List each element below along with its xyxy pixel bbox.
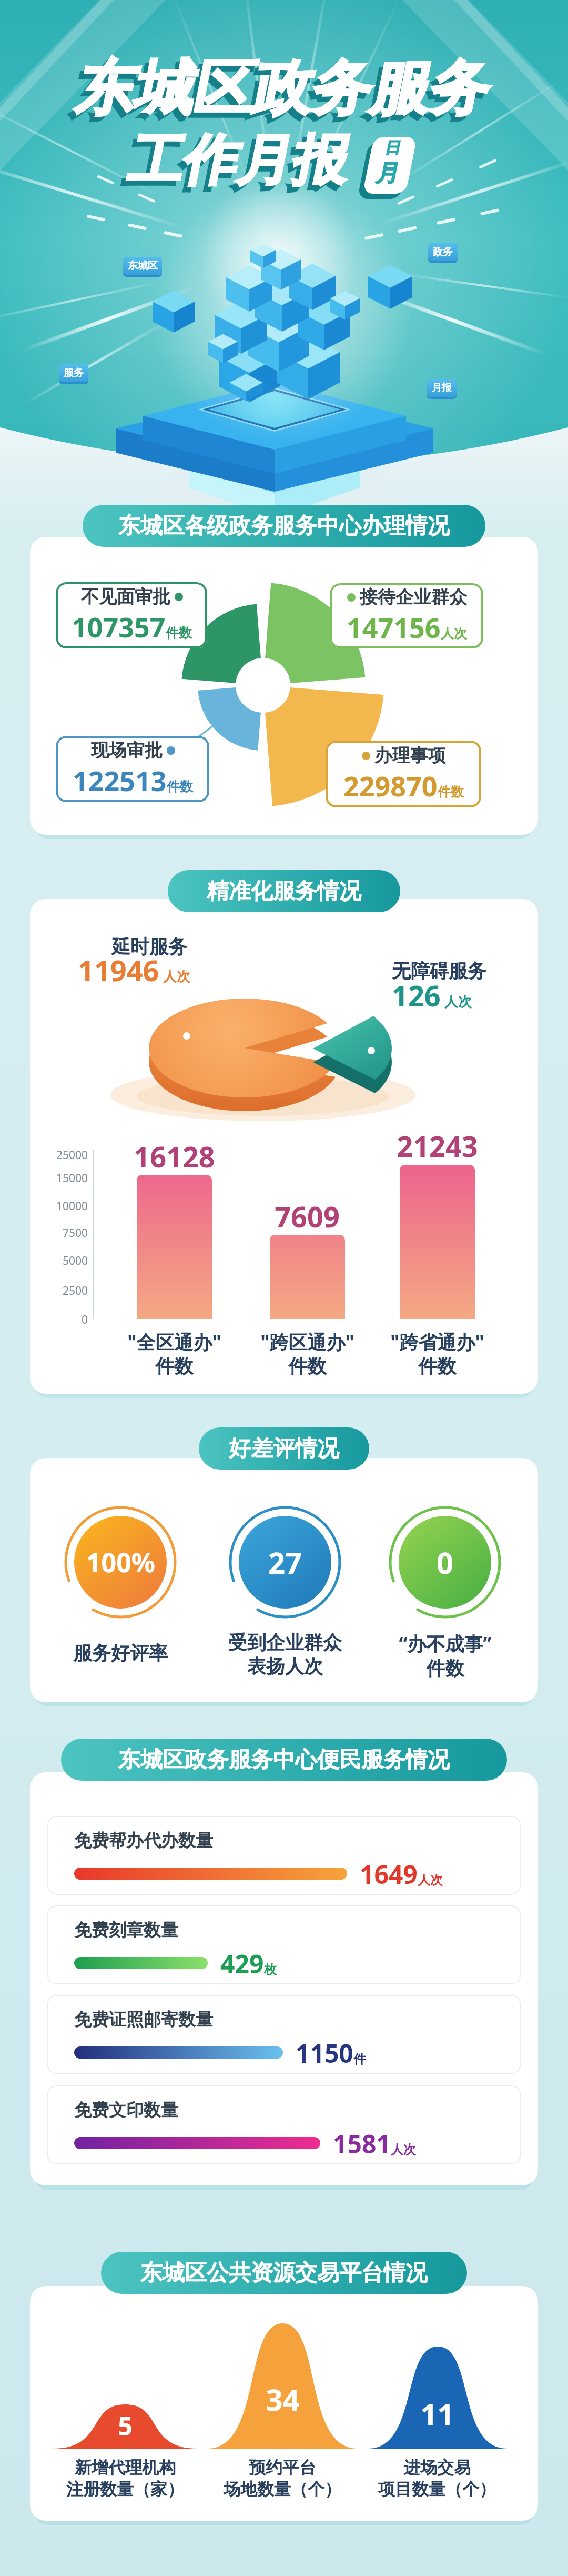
staticText: 147156 [347, 608, 441, 646]
staticText: 办理事项 [374, 744, 446, 767]
button[interactable]: 免费文印数量 [47, 2085, 521, 2164]
staticText: 15000 [56, 1171, 88, 1186]
staticText: 接待企业群众 [360, 586, 467, 608]
staticText: "跨省通办" 件数 [390, 1329, 484, 1379]
staticText: 服务 [64, 367, 84, 380]
staticText: 人次 [441, 992, 472, 1011]
button[interactable]: 月报 [427, 379, 457, 397]
staticText: 21243 [397, 1126, 478, 1165]
staticText: “办不成事” 件数 [399, 1631, 492, 1681]
staticText: 人次 [441, 625, 467, 642]
staticText: 服务好评率 [73, 1641, 168, 1665]
button[interactable]: 服务 [59, 364, 88, 382]
staticText: 107357 [72, 608, 166, 645]
staticText: 10000 [56, 1199, 88, 1214]
staticText: 件数 [166, 625, 192, 641]
button[interactable]: 免费刻章数量 [47, 1905, 521, 1984]
staticText: 现场审批 [91, 739, 163, 762]
staticText: 5000 [63, 1253, 88, 1269]
staticText: 东城区政务服务中心便民服务情况 [118, 1746, 450, 1774]
staticText: 1581 [333, 2126, 391, 2161]
staticText: 7609 [275, 1197, 340, 1236]
staticText: 件 [353, 2051, 366, 2067]
staticText: 东城区 [128, 259, 158, 272]
staticText: 受到企业群众 表扬人次 [228, 1631, 342, 1679]
staticText: 件数 [167, 778, 193, 795]
button[interactable]: 东城区政务服务中心便民服务情况 [61, 1739, 507, 1781]
button[interactable]: 精准化服务情况 [168, 870, 400, 912]
staticText: 人次 [418, 1872, 443, 1888]
button[interactable]: 政务 [428, 243, 458, 261]
staticText: 16128 [134, 1137, 215, 1176]
button[interactable]: 办理事项 [326, 741, 481, 807]
staticText: 精准化服务情况 [207, 877, 361, 905]
staticText: 免费证照邮寄数量 [74, 2009, 213, 2031]
staticText: 免费刻章数量 [74, 1919, 178, 1941]
staticText: 人次 [159, 966, 190, 985]
staticText: 人次 [391, 2142, 416, 2158]
button[interactable]: 免费证照邮寄数量 [47, 1995, 521, 2074]
staticText: 122513 [73, 762, 167, 799]
staticText: 1649 [360, 1857, 418, 1891]
staticText: 免费文印数量 [74, 2099, 178, 2121]
staticText: 免费帮办代办数量 [74, 1830, 213, 1852]
staticText: 34 [266, 2379, 300, 2419]
staticText: 不见面审批 [81, 585, 170, 608]
button[interactable]: 东城区公共资源交易平台情况 [101, 2252, 467, 2294]
staticText: 0 [437, 1542, 454, 1582]
staticText: 2500 [63, 1283, 88, 1299]
staticText: 进场交易 项目数量（个） [378, 2457, 496, 2500]
staticText: 延时服务 [111, 935, 187, 958]
button[interactable]: 不见面审批 [56, 582, 207, 648]
button[interactable]: 免费帮办代办数量 [47, 1816, 521, 1895]
staticText: 27 [268, 1542, 302, 1582]
staticText: 0 [82, 1312, 88, 1327]
staticText: 新增代理机构 注册数量（家） [66, 2457, 184, 2500]
staticText: 无障碍服务 [392, 959, 486, 983]
staticText: 政务 [433, 246, 453, 258]
staticText: 126 [392, 976, 441, 1015]
staticText: 1150 [296, 2036, 353, 2070]
staticText: 7500 [63, 1225, 88, 1241]
staticText: 好差评情况 [229, 1435, 339, 1463]
staticText: "跨区通办" 件数 [260, 1329, 354, 1379]
button[interactable]: 好差评情况 [199, 1427, 369, 1470]
staticText: 预约平台 场地数量（个） [224, 2457, 341, 2500]
button[interactable]: 现场审批 [56, 736, 209, 802]
staticText: 枚 [264, 1962, 277, 1978]
staticText: 229870 [343, 767, 438, 804]
button[interactable]: 100% [63, 1504, 178, 1620]
staticText: 11946 [78, 951, 159, 990]
staticText: 100% [86, 1544, 155, 1580]
staticText: 429 [220, 1946, 264, 1981]
staticText: 5 [118, 2409, 133, 2443]
button[interactable]: 东城区 [123, 257, 162, 275]
button[interactable]: 接待企业群众 [330, 583, 483, 648]
button[interactable]: 0 [387, 1504, 503, 1620]
staticText: 东城区各级政务服务中心办理情况 [118, 512, 450, 540]
staticText: 11 [420, 2394, 454, 2434]
staticText: 月报 [432, 382, 452, 394]
button[interactable]: 27 [227, 1504, 343, 1620]
staticText: 件数 [438, 784, 464, 800]
staticText: 25000 [56, 1147, 88, 1163]
staticText: "全区通办" 件数 [127, 1329, 221, 1379]
staticText: 东城区公共资源交易平台情况 [140, 2259, 428, 2287]
button[interactable]: 东城区各级政务服务中心办理情况 [83, 505, 485, 547]
